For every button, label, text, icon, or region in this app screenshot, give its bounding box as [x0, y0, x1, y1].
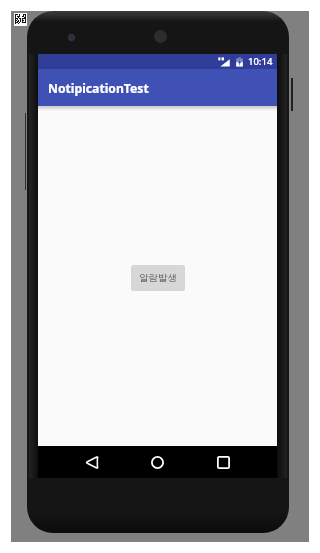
button[interactable]: Recents — [196, 446, 250, 478]
staticText: NotipicationTest — [48, 80, 149, 97]
button[interactable]: 알람발생 — [131, 265, 185, 291]
button[interactable]: Home — [130, 446, 184, 478]
staticText: 알람발생 — [139, 272, 177, 284]
button[interactable]: Back — [64, 446, 118, 478]
staticText: 10:14 — [248, 55, 273, 68]
